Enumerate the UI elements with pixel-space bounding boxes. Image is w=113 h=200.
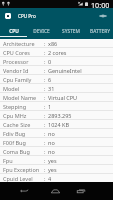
button[interactable]: Cpu MHz xyxy=(0,111,113,119)
staticText: Model Name xyxy=(3,94,37,101)
staticText: Cache Size xyxy=(3,121,31,128)
button[interactable]: Monitor xyxy=(97,10,109,22)
button[interactable]: Model xyxy=(0,84,113,92)
staticText: 2893.295 xyxy=(48,112,72,119)
button[interactable]: Recent apps xyxy=(74,184,88,198)
staticText: 4 xyxy=(48,175,52,182)
button[interactable]: Coma Bug xyxy=(0,147,113,155)
staticText: Model xyxy=(3,85,20,92)
button[interactable]: Processor xyxy=(0,57,113,65)
staticText: : xyxy=(44,49,46,56)
staticText: Fpu xyxy=(3,157,13,164)
staticText: : xyxy=(44,148,46,155)
staticText: no xyxy=(48,130,55,137)
button[interactable]: Stepping xyxy=(0,102,113,110)
staticText: CPU Pro xyxy=(18,13,36,19)
button[interactable]: Vendor Id xyxy=(0,66,113,74)
staticText: : xyxy=(44,94,46,101)
staticText: : xyxy=(44,175,46,182)
button[interactable]: Fpu Exception xyxy=(0,165,113,173)
staticText: Cpu MHz xyxy=(3,112,27,119)
staticText: yes xyxy=(48,157,57,164)
button[interactable]: Fdiv Bug xyxy=(0,129,113,137)
staticText: 1024 KB xyxy=(48,121,69,128)
button[interactable]: Cpuid Level xyxy=(0,174,113,182)
staticText: : xyxy=(44,76,46,83)
staticText: : xyxy=(44,58,46,65)
button[interactable]: DEVICE xyxy=(27,24,56,39)
staticText: x86 xyxy=(48,40,58,47)
staticText: 1 xyxy=(48,103,52,110)
staticText: 6 xyxy=(48,76,52,83)
staticText: : xyxy=(44,103,46,110)
staticText: Processor xyxy=(3,58,29,65)
staticText: Cpu Family xyxy=(3,76,32,83)
staticText: : xyxy=(44,130,46,137)
staticText: Cpuid Level xyxy=(3,175,33,182)
staticText: : xyxy=(44,85,46,92)
staticText: : xyxy=(44,67,46,74)
staticText: : xyxy=(44,121,46,128)
staticText: no xyxy=(48,139,55,146)
staticText: : xyxy=(44,139,46,146)
button[interactable]: Fpu xyxy=(0,156,113,164)
button[interactable]: Back xyxy=(17,184,31,198)
staticText: DEVICE xyxy=(33,28,50,35)
staticText: 31 xyxy=(48,85,55,92)
staticText: 10:00 xyxy=(91,0,110,8)
staticText: : xyxy=(44,157,46,164)
button[interactable]: CPU Cores xyxy=(0,48,113,56)
staticText: yes xyxy=(48,166,57,173)
button[interactable]: Model Name xyxy=(0,93,113,101)
staticText: SYSTEM xyxy=(62,28,80,35)
staticText: CPU Cores xyxy=(3,49,30,56)
staticText: Architecture xyxy=(3,40,35,47)
staticText: : xyxy=(44,166,46,173)
button[interactable]: Cache Size xyxy=(0,120,113,128)
button[interactable]: Home xyxy=(48,184,62,198)
staticText: : xyxy=(44,40,46,47)
staticText: BATTERY xyxy=(90,28,110,35)
staticText: CPU xyxy=(9,28,19,35)
staticText: Stepping xyxy=(3,103,27,110)
staticText: : xyxy=(44,112,46,119)
staticText: Coma Bug xyxy=(3,148,30,155)
button[interactable]: CPU xyxy=(0,24,27,39)
staticText: Fdiv Bug xyxy=(3,130,26,137)
staticText: 0 xyxy=(48,58,52,65)
button[interactable]: F00f Bug xyxy=(0,138,113,146)
staticText: Virtual CPU xyxy=(48,94,78,101)
button[interactable]: BATTERY xyxy=(86,24,113,39)
button[interactable]: Cpu Family xyxy=(0,75,113,83)
staticText: Fpu Exception xyxy=(3,166,40,173)
staticText: F00f Bug xyxy=(3,139,26,146)
staticText: 2 cores xyxy=(48,49,67,56)
staticText: no xyxy=(48,148,55,155)
staticText: GenuineIntel xyxy=(48,67,82,74)
button[interactable]: SYSTEM xyxy=(56,24,86,39)
button[interactable]: Architecture xyxy=(0,39,113,47)
staticText: Vendor Id xyxy=(3,67,29,74)
